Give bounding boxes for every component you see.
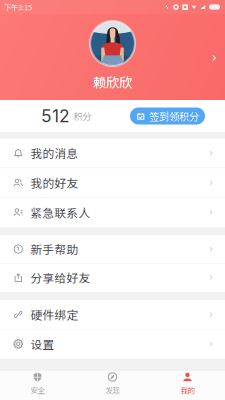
staticText: 安全 (30, 385, 44, 395)
button[interactable]: 发现 (75, 370, 150, 400)
button[interactable]: 安全 (0, 370, 75, 400)
staticText: 硬件绑定 (30, 306, 78, 323)
staticText: 签到领积分 (149, 109, 199, 123)
staticText: 紧急联系人 (30, 204, 90, 221)
button[interactable]: 签到领积分 (130, 107, 205, 124)
button[interactable]: 我的好友 (0, 168, 225, 198)
staticText: 发现 (105, 385, 119, 395)
staticText: 新手帮助 (30, 241, 78, 257)
button[interactable]: 设置 (0, 329, 225, 359)
staticText: 512 (41, 105, 70, 126)
staticText: 设置 (30, 335, 54, 352)
button[interactable]: 我的 (150, 370, 225, 400)
button[interactable]: 硬件绑定 (0, 300, 225, 329)
staticText: 我的好友 (30, 174, 78, 191)
staticText: 积分 (73, 110, 91, 122)
staticText: 赖欣欣 (93, 72, 132, 91)
button[interactable]: 新手帮助 (0, 235, 225, 264)
button[interactable]: 分享给好友 (0, 264, 225, 292)
staticText: 分享给好友 (30, 269, 90, 286)
button[interactable]: 个人资料 (209, 45, 225, 71)
button[interactable]: 我的消息 (0, 138, 225, 168)
staticText: 下午3:15 (4, 2, 32, 12)
button[interactable]: 紧急联系人 (0, 198, 225, 228)
staticText: 我的 (180, 385, 194, 395)
staticText: 我的消息 (30, 145, 78, 161)
